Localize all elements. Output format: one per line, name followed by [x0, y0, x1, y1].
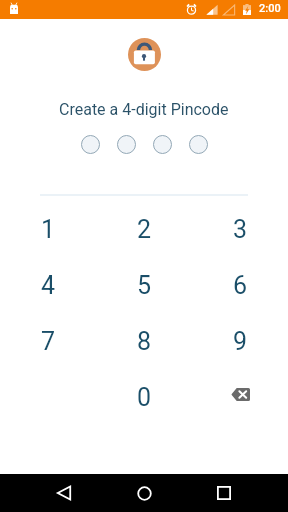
- button[interactable]: 5: [96, 257, 192, 313]
- other: Backspace: [231, 388, 250, 401]
- staticText: 5: [137, 271, 152, 300]
- button[interactable]: 8: [96, 313, 192, 369]
- button[interactable]: Recents: [204, 476, 244, 510]
- button[interactable]: 3: [192, 201, 288, 257]
- staticText: 8: [137, 327, 152, 356]
- staticText: 1: [41, 215, 56, 244]
- button[interactable]: 0: [96, 369, 192, 425]
- staticText: 2: [137, 215, 152, 244]
- staticText: 9: [233, 327, 248, 356]
- button[interactable]: 2: [96, 201, 192, 257]
- staticText: 2:00: [259, 2, 281, 15]
- staticText: Create a 4-digit Pincode: [59, 100, 229, 119]
- button[interactable]: Back: [44, 476, 84, 510]
- staticText: 6: [233, 271, 248, 300]
- staticText: 0: [137, 383, 152, 412]
- staticText: 3: [233, 215, 248, 244]
- button[interactable]: 4: [0, 257, 96, 313]
- button[interactable]: Home: [124, 476, 164, 510]
- button[interactable]: 1: [0, 201, 96, 257]
- button[interactable]: 6: [192, 257, 288, 313]
- button[interactable]: 7: [0, 313, 96, 369]
- button[interactable]: Backspace: [192, 369, 288, 425]
- button[interactable]: 9: [192, 313, 288, 369]
- staticText: 4: [41, 271, 56, 300]
- staticText: 7: [41, 327, 56, 356]
